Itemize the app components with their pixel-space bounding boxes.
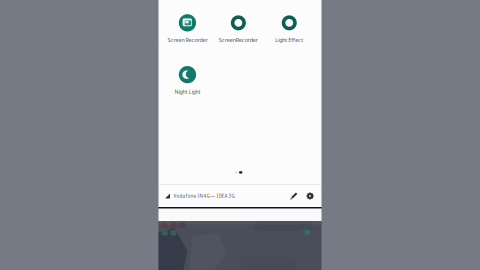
staticText: ScreenRecorder: [219, 36, 258, 44]
staticText: Light Effect: [275, 36, 303, 44]
button[interactable]: Settings: [302, 185, 318, 207]
staticText: Screen Recorder: [167, 36, 207, 44]
button[interactable]: ScreenRecorder: [213, 14, 264, 48]
staticText: Night Light: [174, 88, 200, 95]
button[interactable]: Light Effect: [264, 14, 315, 48]
button[interactable]: Screen Recorder: [162, 14, 213, 48]
button[interactable]: Edit: [286, 185, 302, 207]
button[interactable]: Night Light: [162, 66, 213, 100]
staticText: Vodafone IN 4G — IDEA 3G: [173, 193, 234, 199]
